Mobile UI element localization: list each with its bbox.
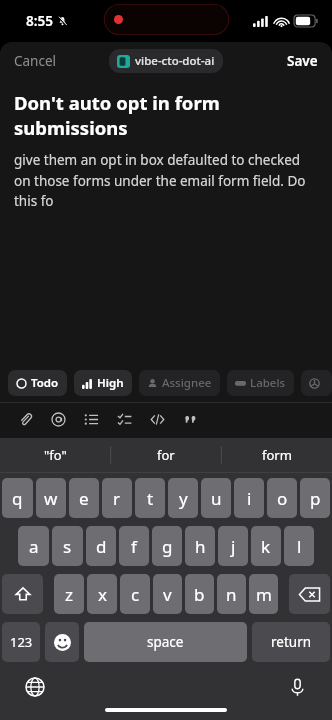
staticText: Save: [287, 52, 318, 70]
button[interactable]: m: [249, 574, 278, 614]
staticText: d: [96, 535, 107, 558]
button[interactable]: Assignee: [139, 370, 220, 396]
button[interactable]: h: [185, 526, 215, 566]
button[interactable]: for: [110, 438, 221, 472]
button[interactable]: p: [300, 478, 330, 518]
button[interactable]: q: [2, 478, 33, 518]
button[interactable]: t: [135, 478, 165, 518]
button[interactable]: u: [201, 478, 231, 518]
staticText: s: [63, 535, 72, 558]
button[interactable]: Cancel: [0, 45, 71, 77]
staticText: j: [231, 535, 236, 558]
button[interactable]: 123: [2, 622, 40, 662]
staticText: p: [310, 487, 321, 510]
button[interactable]: Quote: [179, 408, 201, 430]
button[interactable]: l: [284, 526, 314, 566]
staticText: 123: [10, 633, 33, 651]
staticText: q: [12, 487, 23, 510]
staticText: Labels: [250, 375, 286, 391]
button[interactable]: i: [234, 478, 264, 518]
button[interactable]: "fo": [0, 438, 110, 472]
button[interactable]: form: [221, 438, 332, 472]
button[interactable]: Mention: [47, 408, 69, 430]
button[interactable]: Labels: [227, 370, 294, 396]
staticText: vibe-cto-dot-ai: [135, 53, 215, 69]
button[interactable]: g: [152, 526, 182, 566]
button[interactable]: Bulleted list: [80, 408, 102, 430]
button[interactable]: x: [87, 574, 117, 614]
button[interactable]: Emoji: [45, 622, 79, 662]
staticText: for: [157, 446, 175, 464]
button[interactable]: o: [267, 478, 297, 518]
staticText: z: [65, 583, 73, 606]
button[interactable]: Code: [146, 408, 168, 430]
staticText: r: [113, 487, 121, 510]
button[interactable]: return: [252, 622, 330, 662]
button[interactable]: Shift: [2, 574, 43, 614]
staticText: "fo": [44, 446, 67, 464]
staticText: form: [262, 446, 292, 464]
staticText: Cancel: [14, 52, 57, 70]
staticText: Todo: [31, 375, 59, 391]
staticText: e: [79, 487, 89, 510]
staticText: l: [297, 535, 302, 558]
staticText: Assignee: [162, 375, 212, 391]
button[interactable]: d: [86, 526, 116, 566]
button[interactable]: j: [218, 526, 248, 566]
button[interactable]: Attach: [14, 408, 36, 430]
button[interactable]: Change keyboard: [20, 672, 50, 702]
button[interactable]: Todo: [8, 370, 67, 396]
staticText: o: [277, 487, 288, 510]
staticText: Don't auto opt in form submissions: [14, 90, 318, 140]
button[interactable]: s: [52, 526, 83, 566]
button[interactable]: b: [185, 574, 214, 614]
staticText: return: [271, 633, 312, 651]
staticText: give them an opt in box defaulted to che…: [14, 151, 318, 210]
button[interactable]: c: [120, 574, 150, 614]
button[interactable]: r: [102, 478, 132, 518]
staticText: i: [247, 487, 252, 510]
staticText: t: [147, 487, 154, 510]
staticText: k: [261, 535, 271, 558]
staticText: f: [131, 535, 137, 558]
staticText: g: [162, 535, 173, 558]
staticText: v: [163, 583, 172, 606]
button[interactable]: y: [168, 478, 198, 518]
staticText: w: [44, 487, 58, 510]
button[interactable]: v: [153, 574, 182, 614]
button[interactable]: f: [119, 526, 149, 566]
staticText: High: [97, 375, 124, 391]
button[interactable]: Backspace: [289, 574, 330, 614]
button[interactable]: High: [74, 370, 132, 396]
staticText: n: [226, 583, 237, 606]
button[interactable]: a: [18, 526, 49, 566]
button[interactable]: vibe-cto-dot-ai: [109, 49, 223, 73]
button[interactable]: Dictation: [282, 672, 312, 702]
button[interactable]: Save: [273, 45, 332, 77]
button[interactable]: n: [217, 574, 246, 614]
button[interactable]: e: [69, 478, 99, 518]
staticText: y: [179, 487, 188, 510]
button[interactable]: Project: [301, 370, 332, 396]
staticText: m: [256, 583, 272, 606]
staticText: u: [211, 487, 222, 510]
staticText: 8:55: [26, 12, 53, 30]
button[interactable]: Checklist: [113, 408, 135, 430]
button[interactable]: z: [54, 574, 84, 614]
staticText: b: [194, 583, 205, 606]
staticText: h: [195, 535, 206, 558]
button[interactable]: space: [84, 622, 247, 662]
button[interactable]: k: [251, 526, 281, 566]
staticText: space: [147, 633, 184, 651]
staticText: x: [98, 583, 107, 606]
staticText: a: [29, 535, 39, 558]
staticText: c: [131, 583, 140, 606]
button[interactable]: w: [36, 478, 66, 518]
